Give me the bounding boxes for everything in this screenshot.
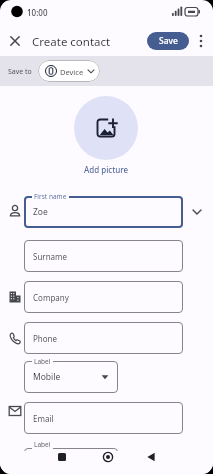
- button[interactable]: [143, 449, 159, 465]
- button[interactable]: Zoe: [24, 196, 183, 228]
- button[interactable]: [7, 33, 23, 49]
- button[interactable]: [54, 449, 70, 465]
- staticText: Company: [33, 292, 69, 303]
- staticText: Save: [159, 35, 178, 47]
- staticText: Email: [33, 413, 54, 424]
- button[interactable]: Phone: [24, 322, 183, 354]
- staticText: Device: [60, 67, 84, 77]
- button[interactable]: Mobile: [24, 361, 118, 393]
- staticText: Phone: [33, 333, 58, 344]
- button[interactable]: [194, 33, 208, 47]
- staticText: Label: [34, 440, 51, 449]
- button[interactable]: Surname: [24, 240, 183, 272]
- staticText: Surname: [33, 251, 68, 262]
- staticText: Zoe: [33, 206, 48, 218]
- button[interactable]: Device: [38, 60, 100, 82]
- staticText: First name: [34, 192, 67, 201]
- button[interactable]: Save: [147, 32, 189, 50]
- staticText: Label: [34, 357, 51, 366]
- staticText: 10:00: [27, 7, 48, 18]
- staticText: Add picture: [84, 164, 129, 175]
- button[interactable]: Company: [24, 281, 183, 313]
- button[interactable]: [74, 96, 138, 160]
- staticText: Create contact: [32, 34, 111, 50]
- button[interactable]: Email: [24, 402, 183, 434]
- staticText: Save to: [8, 67, 32, 77]
- button[interactable]: [100, 449, 116, 465]
- staticText: Mobile: [33, 371, 61, 383]
